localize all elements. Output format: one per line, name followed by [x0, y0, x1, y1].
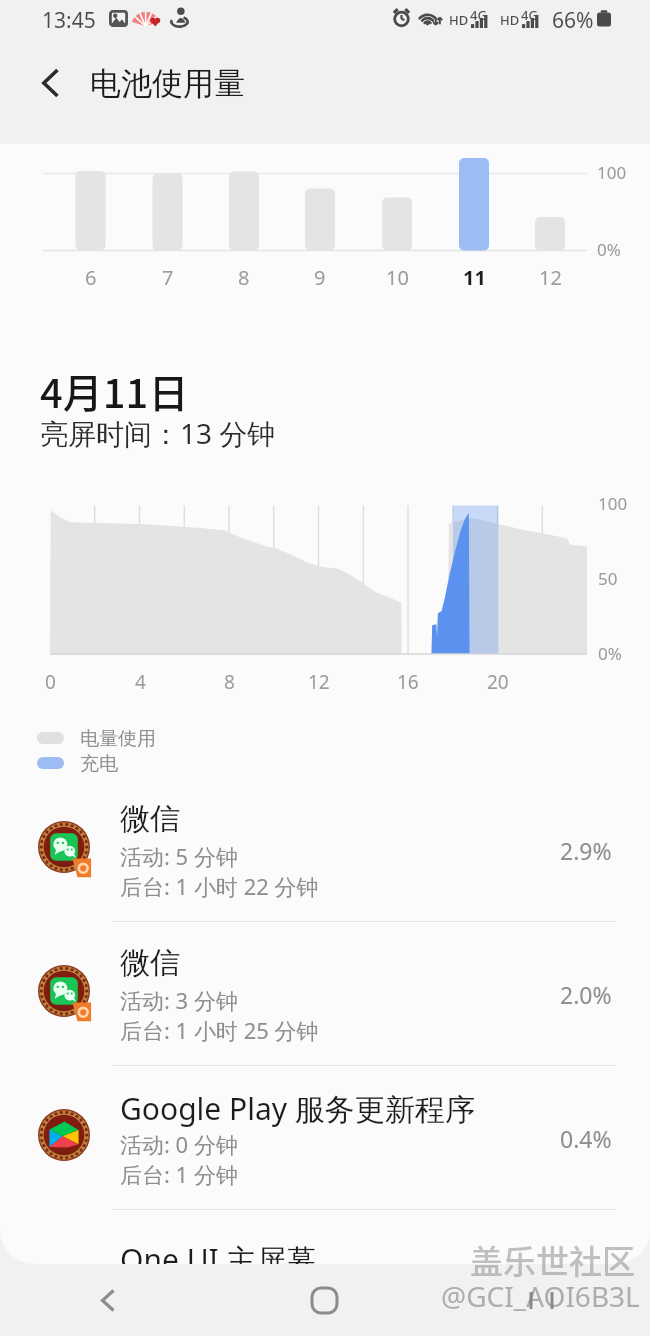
staticText: 8: [224, 669, 235, 695]
button[interactable]: Google Play 服务更新程序: [0, 1066, 650, 1210]
button[interactable]: 微信: [0, 778, 650, 922]
staticText: 0.4%: [560, 1123, 612, 1154]
staticText: 电量使用: [80, 727, 156, 751]
staticText: Google Play 服务更新程序: [120, 1088, 475, 1129]
staticText: 活动: 0 分钟: [120, 1129, 238, 1159]
staticText: 活动: 5 分钟: [120, 841, 238, 871]
staticText: 微信: [120, 944, 180, 982]
staticText: 4月11日: [40, 362, 189, 420]
staticText: 充电: [80, 752, 118, 776]
staticText: 8: [238, 264, 250, 291]
staticText: 50: [598, 567, 618, 590]
staticText: 后台: 1 分钟: [120, 1159, 238, 1189]
staticText: 0%: [598, 642, 622, 665]
button[interactable]: Recents: [433, 1264, 650, 1336]
staticText: 电池使用量: [90, 64, 245, 103]
staticText: 11: [463, 264, 486, 291]
button[interactable]: Back: [0, 1264, 216, 1336]
staticText: 后台: 1 小时 22 分钟: [120, 871, 319, 901]
staticText: 13:45: [42, 6, 96, 35]
staticText: 亮屏时间：13 分钟: [40, 414, 276, 452]
staticText: 4: [135, 669, 146, 695]
staticText: 4G: [521, 6, 538, 24]
button[interactable]: Back: [26, 59, 74, 107]
staticText: 12: [308, 669, 330, 695]
staticText: 7: [162, 264, 174, 291]
staticText: 4G: [470, 6, 487, 24]
staticText: 20: [487, 669, 509, 695]
staticText: 活动: 3 分钟: [120, 985, 238, 1015]
staticText: 10: [386, 264, 409, 291]
staticText: 0: [45, 669, 56, 695]
staticText: HD: [449, 11, 469, 29]
staticText: 16: [397, 669, 419, 695]
staticText: 100: [597, 161, 627, 184]
staticText: 0%: [597, 238, 621, 261]
button[interactable]: 微信: [0, 922, 650, 1066]
staticText: 100: [598, 492, 628, 515]
staticText: 后台: 1 小时 25 分钟: [120, 1015, 319, 1045]
staticText: 6: [85, 264, 97, 291]
staticText: HD: [500, 11, 520, 29]
staticText: 66%: [552, 6, 594, 35]
staticText: 12: [539, 264, 562, 291]
staticText: 盖乐世社区: [470, 1236, 635, 1284]
staticText: 2.0%: [560, 979, 612, 1010]
staticText: 2.9%: [560, 835, 612, 866]
staticText: One UI 主屏幕: [120, 1239, 317, 1280]
staticText: @GCI_AOI6B3L: [441, 1277, 640, 1315]
staticText: 微信: [120, 800, 180, 838]
button[interactable]: Home: [216, 1264, 433, 1336]
staticText: 9: [314, 264, 326, 291]
